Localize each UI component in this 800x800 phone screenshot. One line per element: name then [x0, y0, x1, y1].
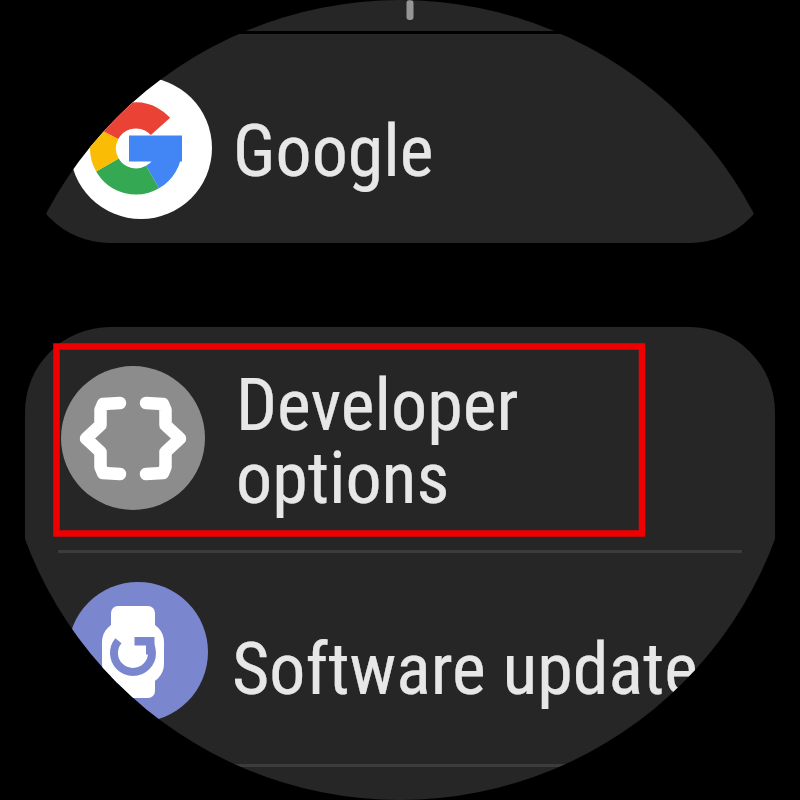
staticText: Developer options	[236, 363, 519, 520]
button[interactable]	[25, 34, 775, 243]
staticText: Google	[233, 109, 434, 193]
button[interactable]	[25, 555, 775, 765]
staticText: Software update	[232, 627, 698, 711]
button[interactable]	[25, 327, 775, 551]
